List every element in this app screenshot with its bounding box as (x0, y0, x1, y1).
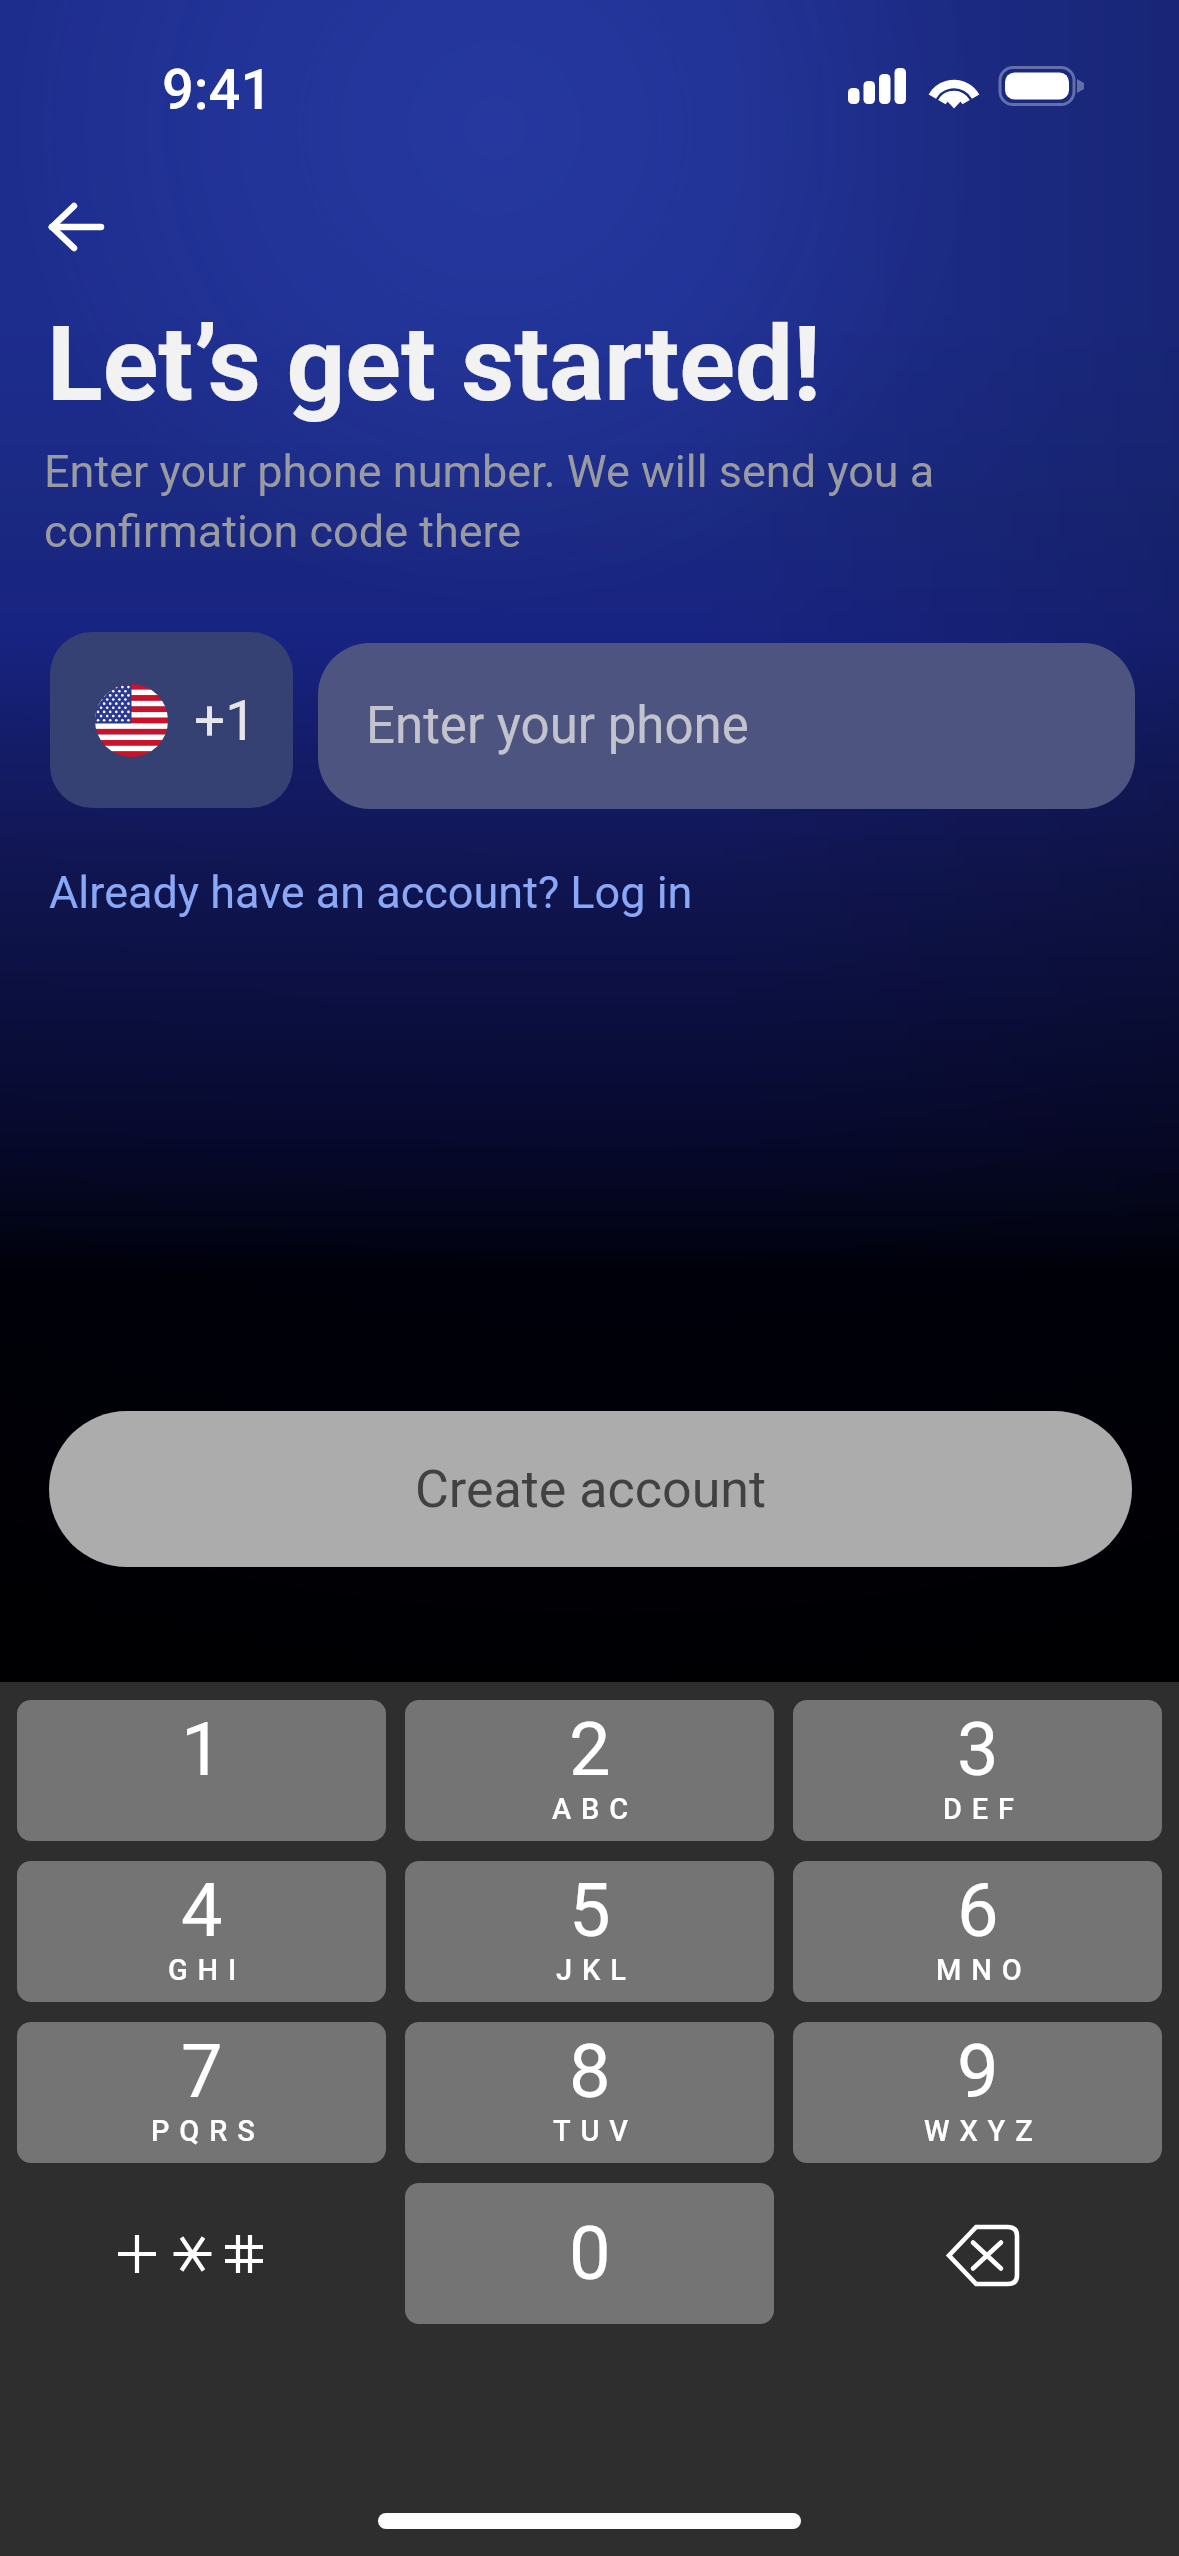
button[interactable]: 3 (793, 1700, 1162, 1841)
staticText: 1 (181, 1706, 223, 1793)
button[interactable]: Delete (792, 2183, 1161, 2324)
button[interactable]: Enter your phone (318, 643, 1135, 809)
button[interactable]: Already have an account? Log in (49, 866, 693, 919)
staticText: 7 (181, 2028, 223, 2115)
staticText: DEF (943, 1792, 1024, 1826)
staticText: 8 (569, 2028, 611, 2115)
button[interactable]: 5 (405, 1861, 774, 2002)
staticText: WXYZ (924, 2114, 1043, 2148)
button[interactable]: 6 (793, 1861, 1162, 2002)
staticText: Create account (415, 1459, 767, 1520)
button[interactable]: 8 (405, 2022, 774, 2163)
button[interactable]: 1 (17, 1700, 386, 1841)
button[interactable]: Symbols (17, 2183, 386, 2324)
button[interactable]: +1 (50, 632, 293, 808)
staticText: 3 (957, 1706, 999, 1793)
staticText: GHI (168, 1953, 247, 1987)
button[interactable]: 4 (17, 1861, 386, 2002)
staticText: 6 (957, 1867, 999, 1954)
button[interactable]: 0 (405, 2183, 774, 2324)
staticText: Enter your phone number. We will send yo… (44, 445, 935, 557)
button[interactable]: 7 (17, 2022, 386, 2163)
staticText: JKL (556, 1953, 636, 1987)
staticText: 9:41 (162, 57, 273, 123)
staticText: Enter your phone (366, 696, 749, 756)
button[interactable]: 2 (405, 1700, 774, 1841)
staticText: ABC (552, 1792, 639, 1826)
staticText: PQRS (151, 2114, 265, 2148)
staticText: TUV (553, 2114, 638, 2148)
staticText: 0 (569, 2210, 611, 2297)
staticText: MNO (936, 1953, 1032, 1987)
button[interactable]: Back (26, 177, 126, 277)
staticText: 5 (569, 1867, 611, 1954)
staticText: +1 (194, 689, 257, 753)
staticText: 9 (957, 2028, 999, 2115)
button[interactable]: Create account (49, 1411, 1132, 1567)
button[interactable]: 9 (793, 2022, 1162, 2163)
staticText: 2 (569, 1706, 611, 1793)
staticText: 4 (181, 1867, 223, 1954)
staticText: Let’s get started! (47, 304, 821, 425)
